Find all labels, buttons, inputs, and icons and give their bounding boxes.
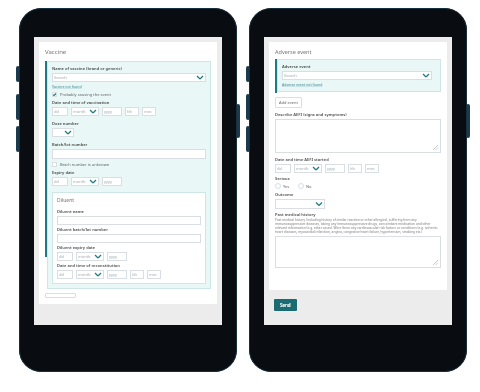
- button[interactable]: dd: [275, 164, 291, 173]
- button[interactable]: Add vaccine: [45, 293, 76, 298]
- button[interactable]: month: [71, 177, 99, 186]
- button[interactable]: hh: [130, 270, 144, 279]
- staticText: Batch number is unknown: [60, 162, 110, 167]
- button[interactable]: mm: [142, 107, 156, 116]
- staticText: Date and time of vaccination: [52, 100, 110, 105]
- staticText: Outcome: [275, 192, 294, 197]
- staticText: Name of vaccine (brand or generic): [52, 66, 122, 71]
- button[interactable]: [275, 119, 441, 153]
- staticText: Diluent name: [57, 209, 84, 214]
- staticText: Expiry date: [52, 170, 75, 175]
- button[interactable]: hh: [125, 107, 139, 116]
- staticText: month: [296, 166, 309, 171]
- button[interactable]: [275, 236, 441, 268]
- staticText: Past medical history: [275, 212, 316, 217]
- staticText: No: [306, 184, 312, 189]
- button[interactable]: dd: [57, 252, 73, 261]
- staticText: Dose number: [52, 121, 79, 126]
- staticText: dd: [59, 254, 64, 259]
- staticText: month: [78, 254, 91, 259]
- button[interactable]: yyyy: [102, 107, 122, 116]
- staticText: Past medical history (including history …: [275, 218, 441, 234]
- staticText: hh: [132, 272, 137, 277]
- staticText: Send: [280, 302, 291, 308]
- button[interactable]: dd: [52, 107, 68, 116]
- button[interactable]: yyyy: [107, 252, 127, 261]
- button[interactable]: Search: [282, 71, 432, 80]
- staticText: Vaccine: [45, 48, 67, 56]
- staticText: Date and time AEFI started: [275, 157, 329, 162]
- staticText: Yes: [283, 184, 290, 189]
- staticText: Batch/lot number: [52, 142, 88, 147]
- button[interactable]: yyyy: [107, 270, 127, 279]
- staticText: Probably causing the event: [60, 92, 111, 97]
- button[interactable]: yyyy: [102, 177, 122, 186]
- button[interactable]: [57, 234, 201, 243]
- button[interactable]: No: [298, 183, 312, 189]
- staticText: yyyy: [109, 254, 118, 259]
- button[interactable]: month: [71, 107, 99, 116]
- staticText: yyyy: [327, 166, 336, 171]
- button[interactable]: dd: [57, 270, 73, 279]
- button[interactable]: Add event: [275, 97, 302, 108]
- staticText: hh: [350, 166, 355, 171]
- staticText: month: [73, 109, 86, 114]
- staticText: mm: [144, 109, 152, 114]
- staticText: Add event: [279, 100, 298, 105]
- staticText: Search: [284, 73, 297, 78]
- button[interactable]: [52, 149, 206, 159]
- staticText: Search: [54, 75, 67, 80]
- staticText: mm: [367, 166, 375, 171]
- button[interactable]: mm: [365, 164, 379, 173]
- staticText: mm: [149, 272, 157, 277]
- button[interactable]: Search: [52, 73, 206, 82]
- button[interactable]: Probably causing the event: [52, 91, 111, 98]
- staticText: dd: [59, 272, 64, 277]
- button[interactable]: mm: [147, 270, 161, 279]
- staticText: Diluent batch/lot number: [57, 227, 108, 232]
- button[interactable]: Yes: [275, 183, 290, 189]
- button[interactable]: Batch number is unknown: [52, 161, 110, 168]
- staticText: Diluent expiry date: [57, 245, 96, 250]
- button[interactable]: month: [76, 252, 104, 261]
- button[interactable]: Adverse event not found: [282, 82, 323, 87]
- button[interactable]: Vaccine not found: [52, 84, 82, 89]
- staticText: Describe AEFI (signs and symptoms): [275, 112, 347, 117]
- staticText: Adverse event: [282, 64, 311, 69]
- staticText: yyyy: [104, 179, 113, 184]
- staticText: Diluent: [57, 197, 75, 204]
- staticText: month: [73, 179, 86, 184]
- button[interactable]: dd: [52, 177, 68, 186]
- button[interactable]: [52, 128, 74, 137]
- button[interactable]: month: [294, 164, 322, 173]
- staticText: dd: [54, 179, 59, 184]
- button[interactable]: yyyy: [325, 164, 345, 173]
- staticText: dd: [54, 109, 59, 114]
- staticText: dd: [277, 166, 282, 171]
- staticText: Adverse event: [275, 48, 312, 55]
- staticText: yyyy: [109, 272, 118, 277]
- button[interactable]: [275, 199, 325, 209]
- staticText: Serious: [275, 176, 290, 181]
- staticText: month: [78, 272, 91, 277]
- button[interactable]: Send: [274, 299, 297, 311]
- staticText: yyyy: [104, 109, 113, 114]
- button[interactable]: [57, 216, 201, 225]
- button[interactable]: hh: [348, 164, 362, 173]
- staticText: hh: [127, 109, 132, 114]
- button[interactable]: month: [76, 270, 104, 279]
- staticText: Date and time of reconstitution: [57, 263, 120, 268]
